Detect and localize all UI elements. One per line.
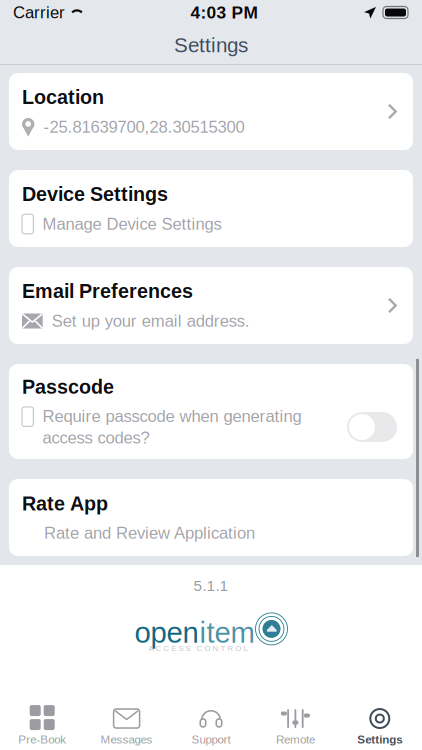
button[interactable]: Messages [84,696,169,750]
staticText: 4:03 PM [190,3,257,22]
staticText: item [199,616,254,649]
staticText: Require passcode when generating [42,407,301,425]
staticText: Pre-Book [18,733,66,746]
button[interactable]: Rate App [9,479,413,556]
staticText: Settings [174,33,248,57]
button[interactable]: Pre-Book [0,696,84,750]
staticText: Manage Device Settings [42,215,221,233]
staticText: Support [191,733,230,746]
staticText: open [134,616,198,649]
staticText: A C C E S S C O N T R O L [148,644,247,652]
staticText: 5.1.1 [193,577,228,594]
staticText: Email Preferences [22,280,193,302]
staticText: Remote [276,733,315,746]
staticText: Messages [101,733,153,746]
staticText: -25.81639700,28.30515300 [43,118,244,136]
button[interactable]: Remote [253,696,338,750]
button[interactable]: Device Settings [9,170,413,247]
button[interactable]: Email Preferences [9,267,413,344]
staticText: Rate App [22,493,108,515]
staticText: Settings [357,733,402,746]
staticText: Set up your email address. [52,312,250,330]
button[interactable]: Settings [338,696,422,750]
staticText: access codes? [42,428,149,447]
button[interactable]: Support [169,696,253,750]
staticText: Carrier [13,3,65,22]
staticText: Passcode [22,376,114,398]
button[interactable]: Passcode [9,364,413,459]
staticText: Rate and Review Application [44,524,255,542]
button[interactable]: Location [9,73,413,150]
staticText: Device Settings [22,183,168,205]
staticText: Location [22,86,104,108]
